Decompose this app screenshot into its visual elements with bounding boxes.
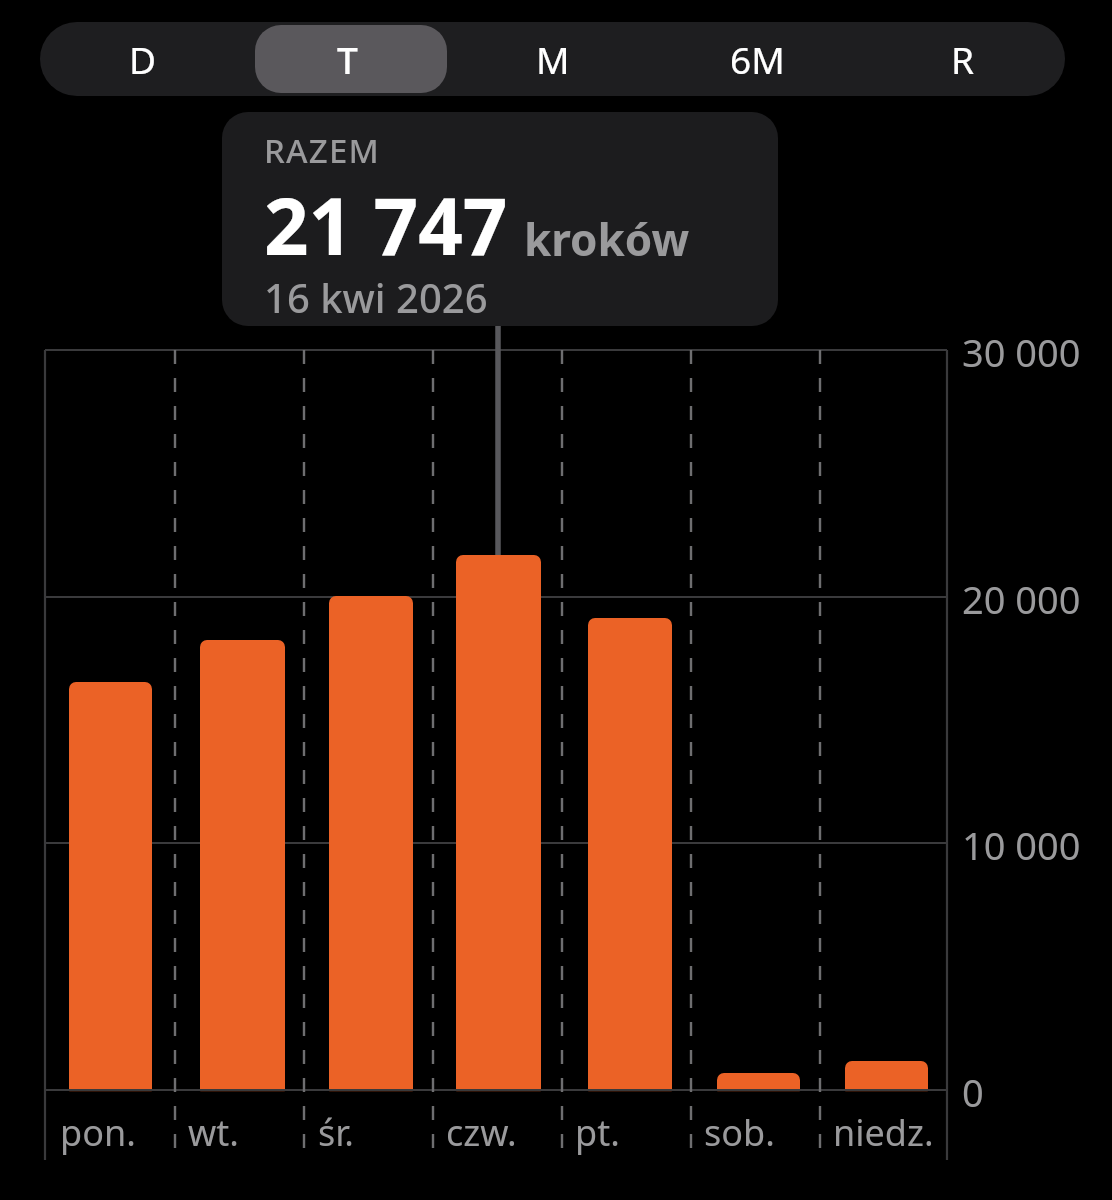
staticText: T <box>337 34 358 84</box>
staticText: 16 kwi 2026 <box>264 270 488 324</box>
button[interactable]: wt. <box>188 1108 308 1156</box>
staticText: 21 747 <box>264 172 508 278</box>
staticText: pon. <box>60 1108 136 1156</box>
staticText: 0 <box>962 1066 984 1116</box>
staticText: D <box>129 34 157 84</box>
button[interactable]: śr. <box>318 1108 438 1156</box>
button[interactable]: pon. <box>60 1108 180 1156</box>
button[interactable]: D <box>40 22 245 96</box>
staticText: niedz. <box>833 1108 934 1156</box>
button[interactable]: sob. <box>704 1108 824 1156</box>
staticText: śr. <box>318 1108 355 1156</box>
staticText: 20 000 <box>962 573 1081 623</box>
button[interactable]: niedz. <box>833 1108 953 1156</box>
staticText: pt. <box>575 1108 620 1156</box>
staticText: sob. <box>704 1108 775 1156</box>
button[interactable]: 6M <box>655 22 860 96</box>
button[interactable]: R <box>860 22 1065 96</box>
staticText: wt. <box>188 1108 239 1156</box>
button[interactable]: M <box>450 22 655 96</box>
button[interactable]: RAZEM <box>222 112 778 326</box>
button[interactable]: pt. <box>575 1108 695 1156</box>
staticText: 6M <box>730 34 785 84</box>
staticText: 10 000 <box>962 819 1081 869</box>
button[interactable]: T <box>245 22 450 96</box>
staticText: M <box>536 34 570 84</box>
staticText: kroków <box>524 209 690 269</box>
staticText: RAZEM <box>264 128 381 173</box>
staticText: czw. <box>446 1108 517 1156</box>
button[interactable]: czw. <box>446 1108 566 1156</box>
staticText: R <box>951 34 975 84</box>
staticText: 30 000 <box>962 326 1081 376</box>
